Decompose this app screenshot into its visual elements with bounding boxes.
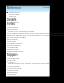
staticText: applied when the component is created by… xyxy=(7,33,64,36)
staticText: Summary xyxy=(9,10,20,13)
button[interactable]: Download release xyxy=(8,61,50,64)
staticText: Usage xyxy=(9,16,17,19)
staticText: Support xyxy=(7,53,18,57)
staticText: Community xyxy=(7,64,21,67)
staticText: Help xyxy=(45,6,50,9)
button[interactable]: Site home xyxy=(7,6,22,10)
staticText: Search xyxy=(43,6,51,9)
staticText: Feedback xyxy=(7,70,18,73)
button[interactable]: Search xyxy=(43,6,51,9)
staticText: Configuration xyxy=(7,41,23,44)
staticText: Dependencies xyxy=(7,49,23,52)
staticText: Constants xyxy=(7,25,19,28)
staticText: Methods xyxy=(9,20,19,23)
staticText: Settings xyxy=(7,39,17,42)
staticText: Contact xyxy=(7,72,16,75)
staticText: Licence xyxy=(7,58,16,61)
button[interactable]: Related guide xyxy=(8,29,35,32)
staticText: Privacy xyxy=(7,60,15,63)
staticText: Examples xyxy=(7,27,18,30)
staticText: Topics xyxy=(9,14,16,17)
staticText: Contributing xyxy=(7,66,22,69)
staticText: at runtime stage. xyxy=(7,35,27,38)
staticText: Resources xyxy=(7,47,19,50)
staticText: View the related guide xyxy=(8,29,35,32)
staticText: Changelog xyxy=(7,56,20,59)
staticText: Reporting xyxy=(7,68,19,71)
staticText: Permissions xyxy=(7,43,21,46)
staticText: Download the latest release bundle xyxy=(8,61,50,64)
staticText: Lifecycle xyxy=(7,51,17,54)
staticText: Structure xyxy=(7,37,18,40)
staticText: Reference xyxy=(7,6,22,10)
staticText: Fields xyxy=(7,22,15,26)
staticText: This page describes the available option… xyxy=(7,31,64,34)
staticText: Overview xyxy=(9,12,20,15)
staticText: Details xyxy=(7,18,17,22)
staticText: Attributes xyxy=(7,45,19,48)
